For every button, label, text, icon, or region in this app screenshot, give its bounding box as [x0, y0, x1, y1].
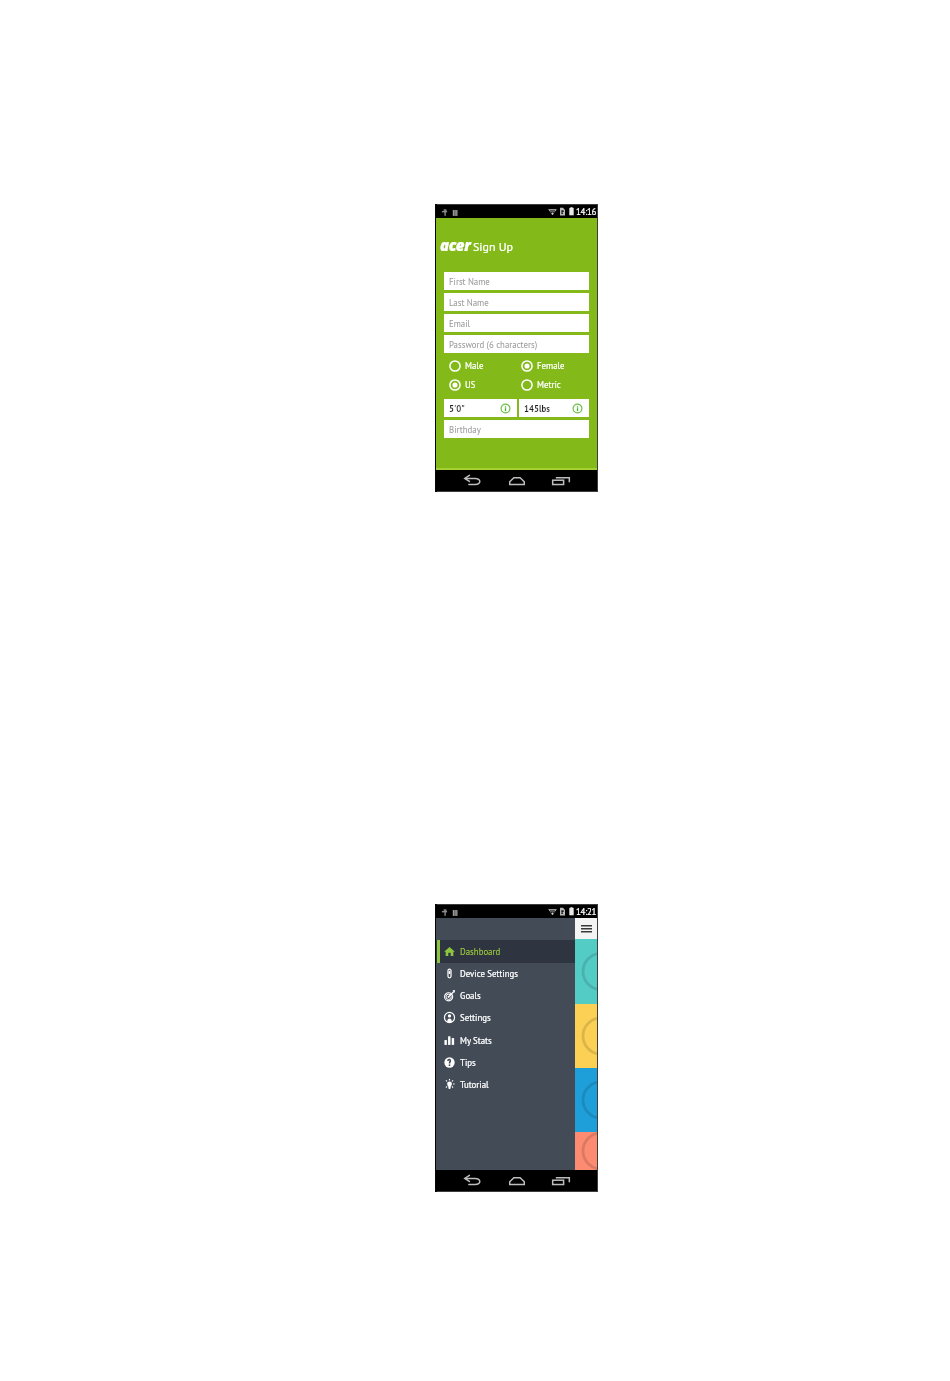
staticText: 5'0" — [449, 403, 465, 414]
button[interactable]: Female — [516, 356, 589, 375]
button[interactable]: First Name — [444, 272, 589, 290]
staticText: Last Name — [449, 297, 489, 308]
staticText: Female — [537, 360, 565, 371]
staticText: Sign Up — [473, 239, 514, 255]
button[interactable]: Metric — [516, 375, 589, 394]
button[interactable]: US — [444, 375, 516, 394]
staticText: Password (6 characters) — [449, 339, 538, 350]
button[interactable]: 5'0" — [444, 399, 517, 417]
button[interactable]: Dashboard — [436, 940, 597, 963]
button[interactable]: Birthday — [444, 420, 589, 438]
staticText: Email — [449, 318, 471, 329]
staticText: Tips — [460, 1057, 476, 1068]
button[interactable]: Tutorial — [436, 1073, 597, 1096]
button[interactable]: Device Settings — [436, 962, 597, 985]
button[interactable]: Recent apps — [548, 473, 574, 489]
button[interactable]: Home — [504, 1173, 530, 1189]
staticText: Dashboard — [460, 946, 501, 957]
button[interactable]: Tips — [436, 1051, 597, 1074]
staticText: acer — [440, 235, 471, 255]
button[interactable]: Password (6 characters) — [444, 335, 589, 353]
button[interactable]: Height info — [497, 400, 514, 417]
button[interactable]: Back — [459, 473, 485, 489]
button[interactable]: Home — [504, 473, 530, 489]
button[interactable]: My Stats — [436, 1029, 597, 1052]
staticText: Metric — [537, 379, 561, 390]
button[interactable]: Weight info — [569, 400, 586, 417]
staticText: Birthday — [449, 424, 481, 435]
staticText: 14:16 — [576, 206, 597, 218]
button[interactable]: Back — [459, 1173, 485, 1189]
staticText: 145lbs — [524, 403, 550, 414]
staticText: Device Settings — [460, 968, 518, 979]
staticText: Tutorial — [460, 1079, 489, 1090]
staticText: US — [465, 379, 476, 390]
staticText: 14:21 — [576, 906, 597, 918]
staticText: My Stats — [460, 1035, 492, 1046]
button[interactable]: Goals — [436, 984, 597, 1007]
button[interactable]: Open navigation menu — [575, 918, 597, 939]
button[interactable]: Last Name — [444, 293, 589, 311]
button[interactable]: Recent apps — [548, 1173, 574, 1189]
button[interactable]: Email — [444, 314, 589, 332]
staticText: Settings — [460, 1012, 491, 1023]
staticText: Goals — [460, 990, 481, 1001]
button[interactable]: Settings — [436, 1006, 597, 1029]
button[interactable]: 145lbs — [519, 399, 589, 417]
button[interactable]: Male — [444, 356, 516, 375]
staticText: First Name — [449, 276, 490, 287]
staticText: Male — [465, 360, 484, 371]
